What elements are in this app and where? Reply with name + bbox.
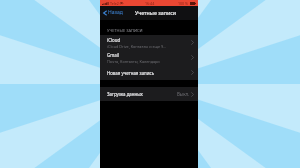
button[interactable]: Назад xyxy=(103,9,123,16)
staticText: УЧЕТНЫЕ ЗАПИСИ xyxy=(107,28,143,33)
staticText: Gmail xyxy=(107,52,120,58)
button[interactable]: Gmail xyxy=(100,50,198,65)
button[interactable]: Загрузка данных xyxy=(100,87,198,101)
button[interactable]: iCloud xyxy=(100,35,198,50)
button[interactable]: Новая учетная запись xyxy=(100,65,198,80)
staticText: iCloud Drive, Контакты и еще 9... xyxy=(107,44,167,49)
staticText: Почта, Контакты, Календари xyxy=(107,59,160,64)
staticText: Tele2 xyxy=(110,1,119,6)
staticText: Выкл. xyxy=(177,91,190,97)
staticText: iCloud xyxy=(107,37,121,43)
staticText: 16:44 xyxy=(145,1,155,6)
staticText: Загрузка данных xyxy=(107,91,143,97)
staticText: Назад xyxy=(108,9,123,16)
staticText: 100 % xyxy=(178,1,189,6)
staticText: Учетные записи xyxy=(135,9,177,16)
staticText: Новая учетная запись xyxy=(107,70,155,76)
